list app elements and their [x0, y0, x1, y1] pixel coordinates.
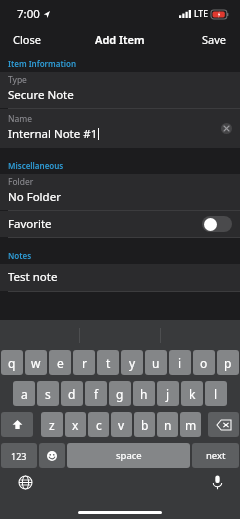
button[interactable]: Save	[189, 27, 240, 52]
staticText: d	[68, 386, 76, 402]
staticText: j	[166, 386, 170, 402]
button[interactable]: v	[111, 412, 132, 437]
button[interactable]: Emoji	[39, 443, 65, 468]
staticText: Save	[202, 32, 227, 47]
button[interactable]: n	[157, 412, 178, 437]
staticText: Favorite	[8, 216, 202, 232]
staticText: 123	[11, 450, 27, 462]
button[interactable]: c	[88, 412, 109, 437]
staticText: No Folder	[8, 189, 61, 205]
button[interactable]: Change keyboard	[19, 476, 32, 489]
staticText: i	[178, 355, 182, 371]
staticText: o	[200, 355, 208, 371]
staticText: z	[49, 417, 55, 433]
button[interactable]: h	[133, 381, 155, 406]
staticText: h	[140, 386, 148, 402]
button[interactable]: l	[205, 381, 227, 406]
button[interactable]: next	[192, 443, 239, 468]
staticText: s	[45, 386, 51, 402]
button[interactable]: q	[1, 350, 23, 375]
button[interactable]: Name	[0, 109, 240, 148]
button[interactable]: Close	[0, 27, 54, 52]
button[interactable]: 123	[1, 443, 37, 468]
staticText: g	[116, 386, 124, 402]
staticText: Type	[8, 74, 27, 86]
button[interactable]: z	[41, 412, 63, 437]
staticText: Close	[13, 32, 41, 47]
button[interactable]: u	[145, 350, 167, 375]
button[interactable]: Favorite	[0, 211, 240, 237]
button[interactable]: a	[13, 381, 35, 406]
staticText: k	[189, 386, 196, 402]
staticText: LTE	[194, 8, 208, 20]
button[interactable]: m	[180, 412, 201, 437]
staticText: m	[185, 417, 197, 433]
button[interactable]: Dictate	[212, 475, 223, 490]
button[interactable]: s	[37, 381, 59, 406]
staticText: Secure Note	[8, 87, 74, 103]
staticText: Internal Note #1	[8, 126, 98, 142]
staticText: w	[31, 355, 41, 371]
button[interactable]: Type	[0, 72, 240, 108]
button[interactable]: b	[134, 412, 155, 437]
staticText: p	[224, 355, 232, 371]
button[interactable]: Test note	[0, 264, 240, 291]
staticText: space	[116, 449, 142, 462]
button[interactable]: Folder	[0, 174, 240, 210]
button[interactable]: e	[49, 350, 71, 375]
staticText: 7:00	[17, 6, 40, 22]
staticText: c	[96, 417, 102, 433]
staticText: Folder	[8, 176, 34, 188]
staticText: Item Information	[8, 58, 76, 69]
staticText: r	[82, 355, 87, 371]
button[interactable]: Shift	[1, 412, 33, 437]
button[interactable]: Delete	[208, 412, 239, 437]
staticText: a	[21, 386, 28, 402]
staticText: x	[72, 417, 79, 433]
staticText: Miscellaneous	[8, 160, 64, 171]
staticText: Notes	[8, 250, 32, 261]
button[interactable]: t	[97, 350, 119, 375]
staticText: Add Item	[95, 32, 145, 47]
button[interactable]: i	[169, 350, 191, 375]
staticText: v	[118, 417, 125, 433]
staticText: next	[206, 449, 226, 462]
button[interactable]: k	[181, 381, 203, 406]
button[interactable]: Clear text	[221, 123, 232, 134]
button[interactable]: d	[61, 381, 83, 406]
button[interactable]: p	[217, 350, 239, 375]
staticText: q	[8, 355, 16, 371]
staticText: Test note	[8, 269, 58, 285]
button[interactable]: f	[85, 381, 107, 406]
button[interactable]: j	[157, 381, 179, 406]
button[interactable]: Favorite	[202, 216, 232, 232]
staticText: u	[152, 355, 160, 371]
button[interactable]: space	[67, 443, 190, 468]
staticText: y	[129, 355, 136, 371]
button[interactable]: x	[65, 412, 86, 437]
button[interactable]: r	[73, 350, 95, 375]
button[interactable]: g	[109, 381, 131, 406]
staticText: l	[214, 386, 218, 402]
staticText: b	[141, 417, 149, 433]
button[interactable]: y	[121, 350, 143, 375]
staticText: t	[106, 355, 111, 371]
staticText: e	[57, 355, 64, 371]
staticText: Name	[8, 113, 32, 125]
button[interactable]: o	[193, 350, 215, 375]
staticText: f	[94, 386, 99, 402]
staticText: n	[164, 417, 172, 433]
button[interactable]: w	[25, 350, 47, 375]
